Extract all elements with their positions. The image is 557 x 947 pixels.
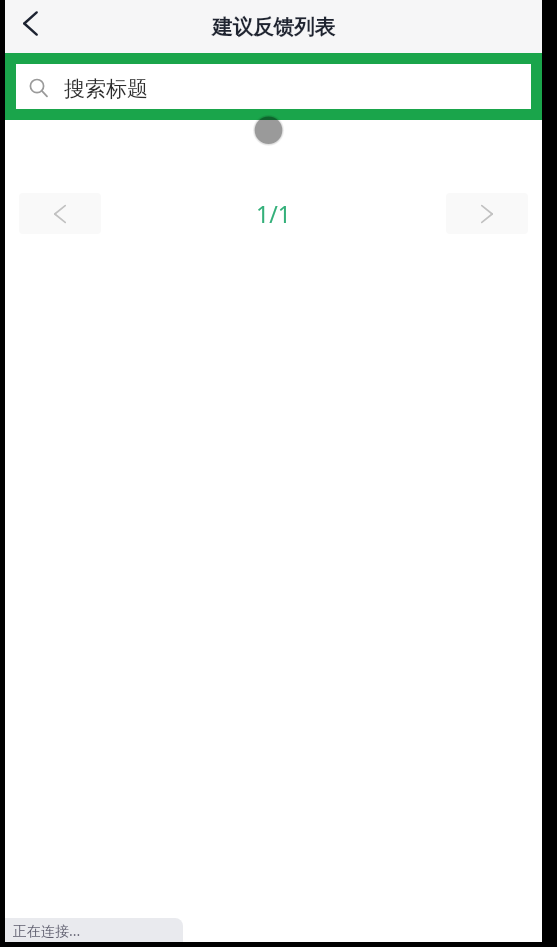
button[interactable]: Back (5, 0, 58, 53)
staticText: 1/1 (256, 198, 291, 229)
button[interactable]: Previous page (19, 193, 101, 234)
button[interactable]: Next page (446, 193, 528, 234)
staticText: 正在连接... (13, 921, 81, 940)
button[interactable]: 搜索标题 (16, 64, 531, 109)
staticText: 搜索标题 (64, 76, 148, 102)
staticText: 建议反馈列表 (212, 14, 335, 40)
